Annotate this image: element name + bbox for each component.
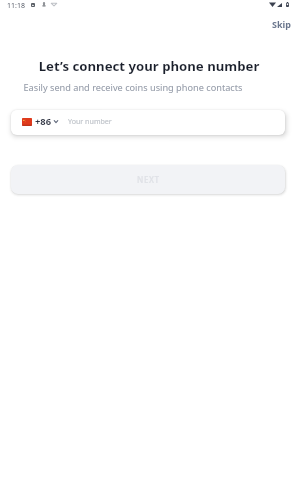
staticText: Your number (68, 116, 112, 126)
staticText: +86 (35, 115, 52, 128)
staticText: NEXT (137, 174, 160, 185)
staticText: Skip (272, 18, 291, 30)
button[interactable]: Your number (68, 110, 285, 132)
button[interactable]: Select country calling code, currently +… (21, 112, 59, 131)
staticText: Let’s connect your phone number (1, 57, 296, 75)
staticText: Easily send and receive coins using phon… (0, 81, 281, 94)
staticText: 11:18 (7, 1, 25, 11)
button[interactable]: Skip (262, 13, 296, 35)
